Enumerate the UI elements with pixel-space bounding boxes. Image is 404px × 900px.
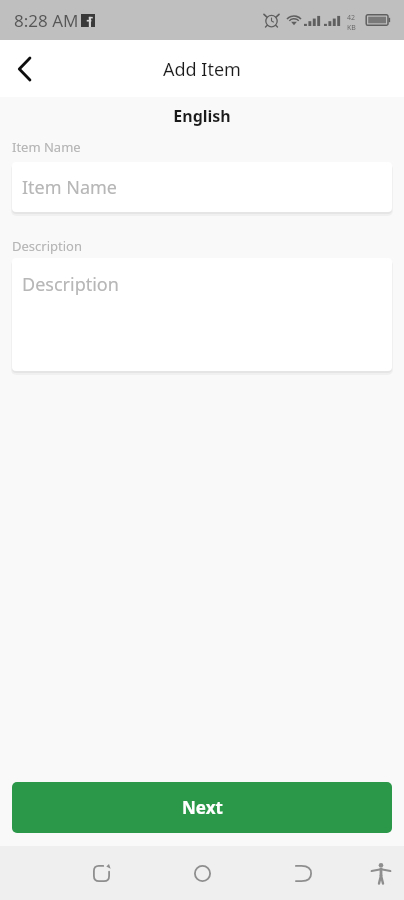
staticText: English bbox=[173, 105, 231, 127]
staticText: Item Name bbox=[22, 175, 118, 200]
staticText: Description bbox=[22, 272, 119, 297]
staticText: 42 bbox=[347, 13, 356, 23]
button[interactable]: English bbox=[0, 98, 404, 129]
button[interactable]: Recent apps bbox=[80, 852, 122, 894]
button[interactable]: Description bbox=[12, 258, 392, 371]
staticText: KB bbox=[347, 23, 356, 33]
staticText: Description bbox=[12, 237, 82, 255]
staticText: 8:28 AM bbox=[14, 9, 79, 32]
button[interactable]: Back bbox=[4, 49, 44, 89]
button[interactable]: Accessibility bbox=[360, 852, 402, 894]
staticText: Add Item bbox=[163, 57, 241, 82]
button[interactable]: Item Name bbox=[12, 162, 392, 212]
staticText: Next bbox=[182, 796, 223, 819]
staticText: Item Name bbox=[12, 138, 81, 156]
button[interactable]: Home bbox=[181, 852, 223, 894]
button[interactable]: Next bbox=[12, 782, 392, 833]
button[interactable]: Back bbox=[282, 852, 324, 894]
